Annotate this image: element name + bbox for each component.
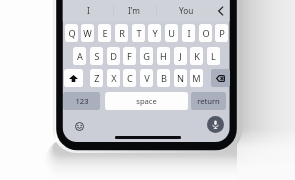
staticText: L	[211, 50, 216, 63]
button[interactable]: B	[157, 69, 170, 87]
button[interactable]: Dictate	[207, 116, 224, 133]
button[interactable]: Y	[148, 24, 161, 42]
button[interactable]: U	[165, 24, 178, 42]
button[interactable]: A	[73, 47, 86, 65]
button[interactable]: I'm	[114, 0, 155, 21]
staticText: C	[127, 72, 133, 85]
button[interactable]: P	[215, 24, 228, 42]
staticText: V	[144, 72, 150, 85]
staticText: D	[110, 50, 117, 63]
staticText: You	[179, 5, 194, 16]
staticText: K	[194, 50, 200, 63]
button[interactable]: space	[105, 92, 188, 110]
button[interactable]: You	[156, 0, 216, 21]
button[interactable]: J	[174, 47, 187, 65]
staticText: 123	[75, 96, 89, 106]
button[interactable]: E	[98, 24, 111, 42]
button[interactable]: N	[174, 69, 187, 87]
button[interactable]: Emoji keyboard	[71, 118, 88, 135]
staticText: H	[160, 50, 167, 63]
staticText: P	[219, 27, 225, 40]
staticText: J	[179, 50, 182, 63]
button[interactable]: L	[207, 47, 220, 65]
staticText: X	[111, 72, 117, 85]
button[interactable]: K	[190, 47, 203, 65]
staticText: B	[161, 72, 167, 85]
staticText: T	[136, 27, 142, 40]
staticText: Q	[68, 27, 76, 40]
button[interactable]: G	[140, 47, 153, 65]
button[interactable]: X	[107, 69, 120, 87]
staticText: return	[197, 96, 220, 106]
staticText: Y	[152, 27, 158, 40]
button[interactable]: Z	[90, 69, 103, 87]
staticText: R	[119, 27, 125, 40]
button[interactable]: H	[157, 47, 170, 65]
button[interactable]: W	[81, 24, 94, 42]
button[interactable]: I	[182, 24, 195, 42]
button[interactable]: I	[63, 0, 113, 21]
staticText: I'm	[128, 5, 141, 16]
button[interactable]: O	[199, 24, 212, 42]
staticText: I	[187, 27, 191, 40]
button[interactable]: Q	[65, 24, 78, 42]
staticText: W	[83, 27, 92, 40]
staticText: E	[102, 27, 108, 40]
staticText: S	[94, 50, 100, 63]
staticText: M	[192, 72, 201, 85]
button[interactable]: Collapse keyboard	[213, 1, 228, 20]
staticText: I	[87, 5, 90, 16]
staticText: space	[136, 96, 157, 106]
staticText: F	[127, 50, 132, 63]
button[interactable]: D	[107, 47, 120, 65]
staticText: U	[168, 27, 175, 40]
button[interactable]: 123	[63, 92, 100, 110]
button[interactable]: return	[191, 92, 226, 110]
staticText: N	[177, 72, 184, 85]
staticText: O	[202, 27, 210, 40]
button[interactable]: Shift	[64, 69, 83, 87]
button[interactable]: M	[190, 69, 203, 87]
button[interactable]: F	[123, 47, 136, 65]
button[interactable]: C	[123, 69, 136, 87]
button[interactable]: Backspace	[211, 69, 230, 87]
button[interactable]: S	[90, 47, 103, 65]
staticText: G	[143, 50, 150, 63]
button[interactable]: R	[115, 24, 128, 42]
staticText: Z	[94, 72, 100, 85]
staticText: A	[77, 50, 83, 63]
button[interactable]: V	[140, 69, 153, 87]
button[interactable]: T	[132, 24, 145, 42]
